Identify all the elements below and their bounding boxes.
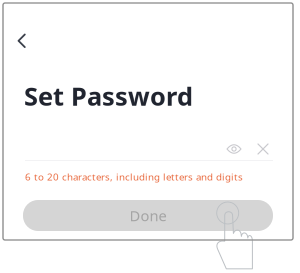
button[interactable]: Done <box>23 200 273 231</box>
button[interactable]: Clear <box>258 144 268 154</box>
staticText: Done <box>129 206 166 225</box>
staticText: Set Password <box>24 79 193 113</box>
staticText: 6 to 20 characters, including letters an… <box>25 170 243 183</box>
button[interactable]: Back <box>8 24 35 57</box>
button[interactable]: Show password <box>227 144 241 154</box>
